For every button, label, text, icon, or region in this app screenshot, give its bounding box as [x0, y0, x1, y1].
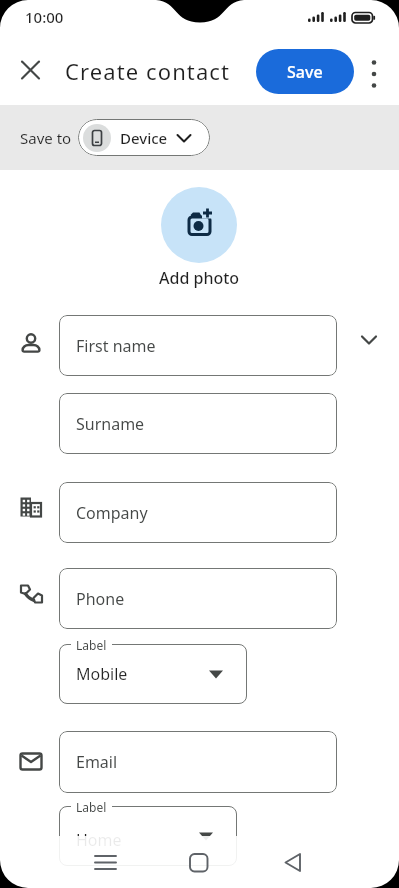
button[interactable] [8, 48, 52, 92]
button[interactable]: Email [59, 731, 337, 793]
staticText: Email [76, 751, 118, 773]
staticText: Save to [20, 128, 72, 148]
button[interactable]: Device [78, 119, 210, 156]
staticText: Mobile [76, 663, 128, 685]
staticText: Create contact [65, 56, 231, 86]
staticText: Phone [76, 588, 125, 610]
staticText: 10:00 [25, 7, 64, 27]
staticText: Add photo [159, 267, 240, 289]
staticText: Home [76, 829, 122, 851]
button[interactable]: Mobile [59, 644, 247, 704]
button[interactable] [271, 840, 315, 888]
staticText: Label [76, 637, 107, 653]
button[interactable]: Home [59, 806, 237, 866]
staticText: Label [76, 799, 107, 815]
button[interactable]: Surname [59, 393, 337, 454]
button[interactable]: First name [59, 315, 337, 376]
staticText: Save [287, 61, 323, 83]
button[interactable]: Save [256, 49, 354, 94]
button[interactable] [161, 187, 237, 263]
button[interactable]: Company [59, 482, 337, 543]
button[interactable] [358, 50, 394, 94]
button[interactable] [84, 840, 128, 888]
button[interactable]: Phone [59, 568, 337, 629]
staticText: First name [76, 335, 156, 357]
staticText: Company [76, 502, 148, 524]
staticText: Surname [76, 413, 145, 435]
staticText: Device [120, 128, 168, 148]
button[interactable] [177, 840, 221, 888]
button[interactable] [356, 328, 382, 354]
